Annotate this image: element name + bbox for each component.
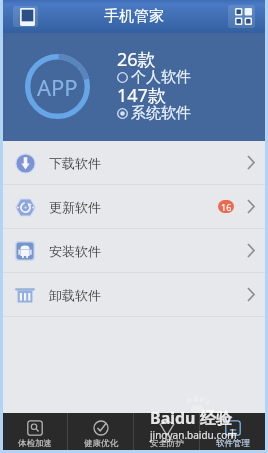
button[interactable]: 体检加速 bbox=[3, 413, 67, 450]
staticText: 安全防护 bbox=[150, 438, 184, 449]
staticText: 卸载软件 bbox=[49, 287, 101, 303]
staticText: 软件管理 bbox=[216, 438, 250, 449]
staticText: 下载软件 bbox=[49, 155, 101, 171]
staticText: jingyan.baidu.com bbox=[150, 428, 237, 442]
staticText: APP bbox=[37, 72, 78, 102]
staticText: 更新软件 bbox=[49, 199, 101, 215]
staticText: 安装软件 bbox=[49, 243, 101, 259]
button[interactable]: 更新软件 bbox=[3, 185, 265, 228]
button[interactable]: 安全防护 bbox=[134, 413, 199, 450]
button[interactable]: 下载软件 bbox=[3, 141, 265, 184]
button[interactable]: 安装软件 bbox=[3, 229, 265, 272]
button[interactable]: Apps grid bbox=[228, 5, 255, 28]
button[interactable]: 软件管理 bbox=[200, 413, 265, 450]
staticText: 147款 bbox=[117, 83, 166, 108]
button[interactable]: 健康优化 bbox=[68, 413, 133, 450]
staticText: 系统软件 bbox=[131, 104, 191, 123]
staticText: 16 bbox=[221, 201, 232, 213]
staticText: 26款 bbox=[117, 47, 156, 72]
button[interactable]: Device bbox=[13, 6, 38, 27]
button[interactable]: 卸载软件 bbox=[3, 273, 265, 316]
staticText: Baidu 经验 bbox=[150, 407, 232, 429]
staticText: 健康优化 bbox=[84, 438, 118, 449]
staticText: 手机管家 bbox=[104, 7, 164, 26]
staticText: 个人软件 bbox=[131, 68, 191, 87]
staticText: 体检加速 bbox=[18, 438, 52, 449]
